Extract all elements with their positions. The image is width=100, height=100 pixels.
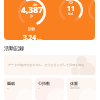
staticText: 11 bbox=[67, 4, 76, 14]
button[interactable]: 歩数 bbox=[18, 0, 46, 26]
button[interactable]: データが取得できません。すぐにリンクして計測を開始 bbox=[4, 55, 96, 75]
button[interactable]: 体重 bbox=[67, 78, 96, 100]
staticText: 睡眠 bbox=[7, 81, 15, 86]
staticText: -- bbox=[38, 86, 40, 90]
staticText: 3.24 bbox=[23, 33, 36, 40]
staticText: 4月15日 bbox=[70, 86, 80, 90]
staticText: 歩数 bbox=[28, 27, 36, 32]
button[interactable]: 睡眠 bbox=[4, 78, 32, 100]
staticText: 4,387 bbox=[21, 4, 43, 16]
staticText: km bbox=[36, 37, 42, 40]
button[interactable]: 心拍数 bbox=[35, 78, 64, 100]
staticText: 心拍数 bbox=[38, 81, 50, 86]
staticText: -- bbox=[7, 86, 9, 90]
staticText: kcal bbox=[68, 12, 74, 16]
staticText: 歩 bbox=[30, 14, 34, 18]
staticText: 体重 bbox=[70, 81, 78, 86]
staticText: 活動記録 bbox=[4, 45, 24, 51]
staticText: データが取得できません。すぐにリンクして計測を開始 bbox=[8, 63, 85, 67]
button[interactable]: 消費カロリー bbox=[59, 0, 83, 22]
